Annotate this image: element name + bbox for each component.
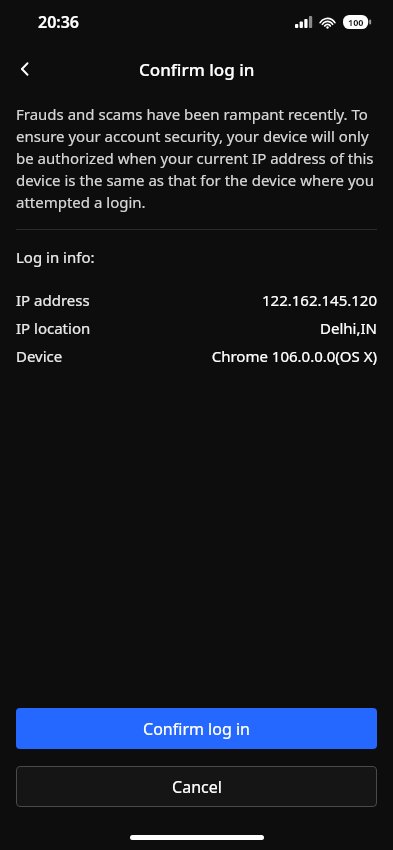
button[interactable]: Device: [0, 342, 393, 370]
button[interactable]: Confirm log in: [16, 708, 377, 749]
staticText: Chrome 106.0.0.0(OS X): [211, 346, 377, 366]
staticText: Confirm log in: [139, 58, 255, 81]
staticText: Device: [16, 346, 63, 366]
staticText: 122.162.145.120: [261, 290, 377, 310]
staticText: Confirm log in: [143, 718, 250, 740]
button[interactable]: Cancel: [16, 766, 377, 807]
button[interactable]: IP address: [0, 286, 393, 314]
staticText: Log in info:: [16, 247, 95, 267]
staticText: IP location: [16, 318, 91, 338]
staticText: Delhi,IN: [320, 318, 377, 338]
button[interactable]: Back: [6, 50, 44, 88]
button[interactable]: IP location: [0, 314, 393, 342]
staticText: Cancel: [172, 776, 222, 798]
staticText: IP address: [16, 290, 90, 310]
staticText: 20:36: [38, 11, 80, 33]
staticText: Frauds and scams have been rampant recen…: [16, 104, 379, 213]
staticText: 100: [348, 16, 364, 28]
